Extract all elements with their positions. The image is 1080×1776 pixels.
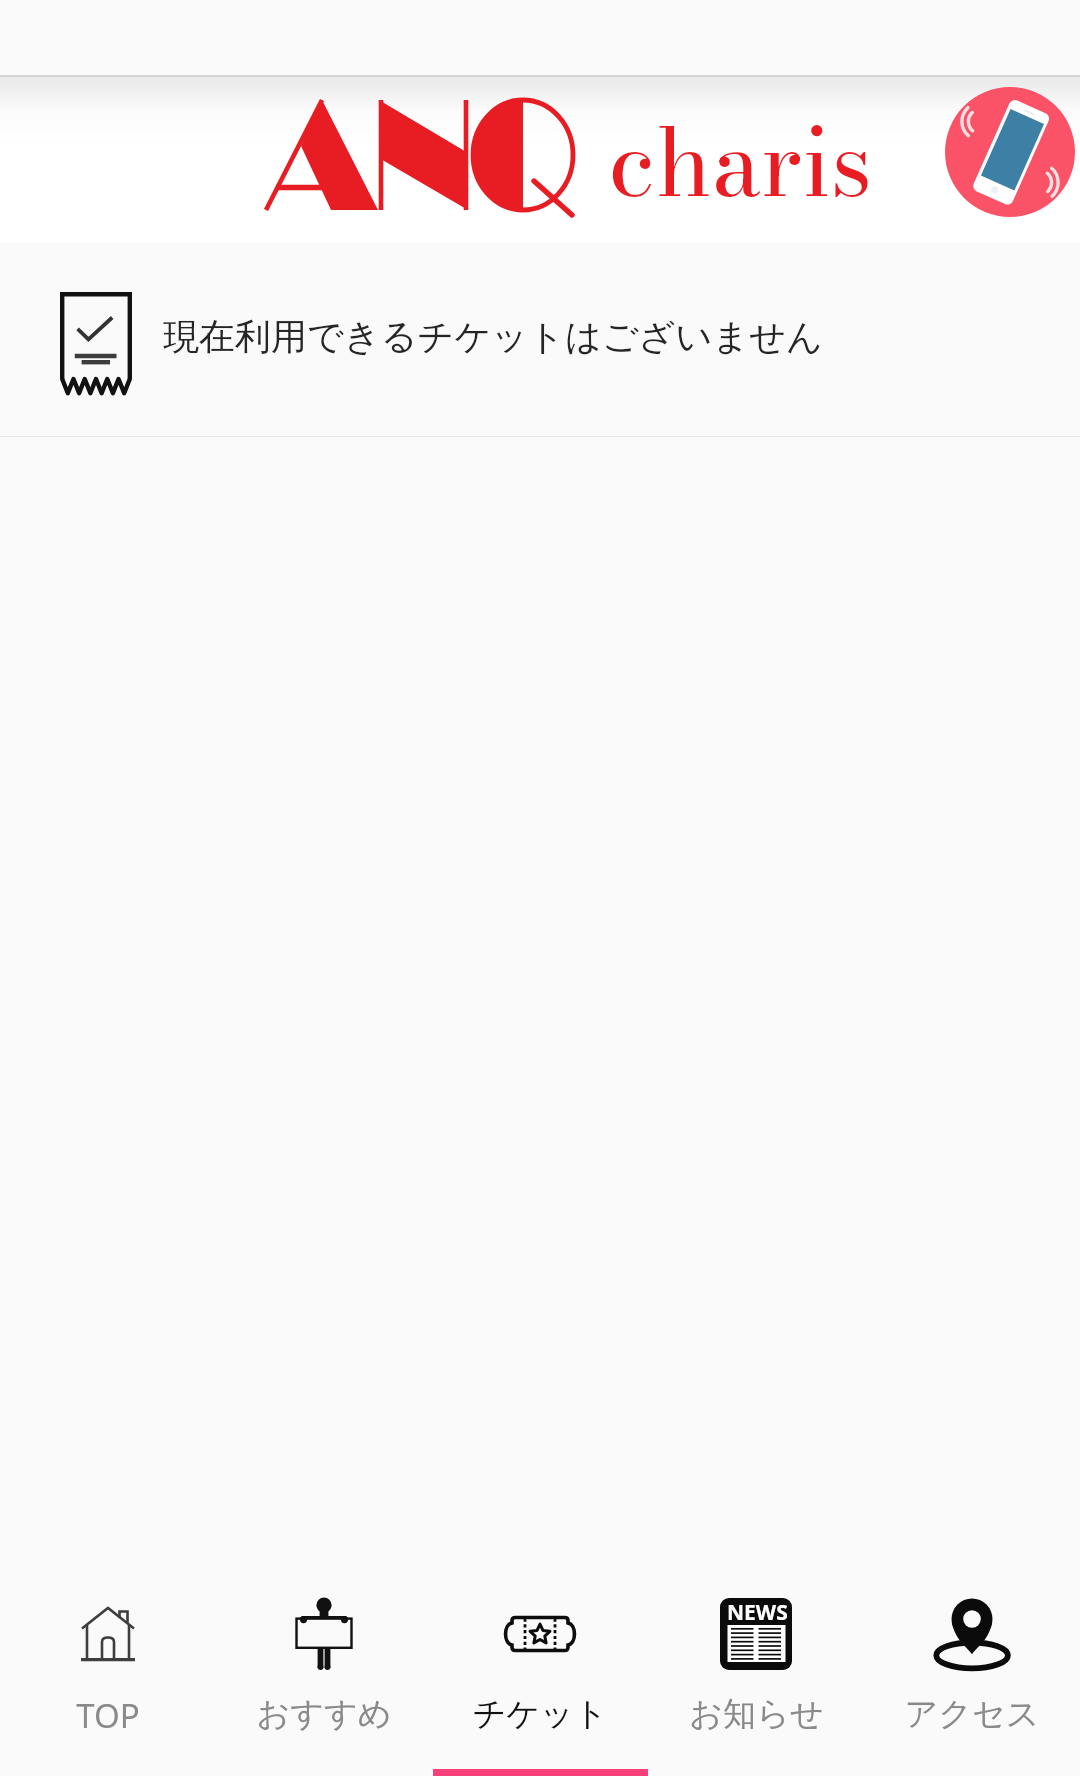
staticText: NEWS	[727, 1598, 788, 1627]
staticText: 現在利用できるチケットはございません	[163, 314, 823, 359]
button[interactable]: アクセス	[864, 1560, 1080, 1776]
staticText: charis	[608, 90, 873, 233]
button[interactable]: 現在利用できるチケットはございません	[0, 243, 1080, 436]
staticText: おすすめ	[256, 1693, 392, 1735]
staticText: TOP	[76, 1693, 140, 1738]
button[interactable]: おすすめ	[216, 1560, 432, 1776]
button[interactable]: Mobile site	[945, 87, 1075, 217]
staticText: お知らせ	[689, 1693, 824, 1735]
staticText: チケット	[472, 1693, 608, 1735]
button[interactable]: TOP	[0, 1560, 216, 1776]
staticText: アクセス	[904, 1693, 1040, 1735]
button[interactable]: NEWS	[648, 1560, 864, 1776]
button[interactable]: チケット	[432, 1560, 648, 1776]
